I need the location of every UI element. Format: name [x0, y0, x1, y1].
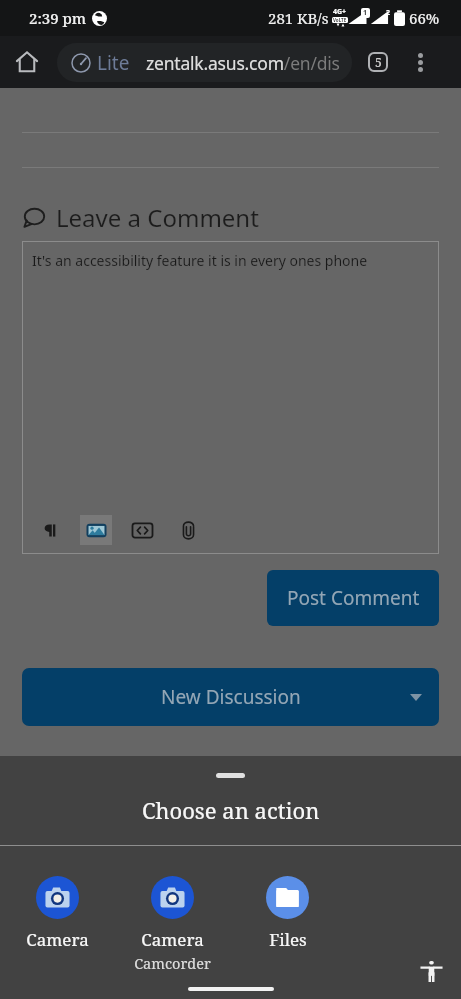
button[interactable]: Attach file	[165, 512, 211, 548]
button[interactable]: Tabs, 5 open	[356, 36, 400, 88]
staticText: 1	[363, 8, 368, 18]
staticText: It's an accessibility feature it is in e…	[32, 251, 368, 270]
staticText: Leave a Comment	[56, 201, 259, 234]
button[interactable]: New Discussion	[22, 668, 439, 726]
staticText: New Discussion	[161, 684, 301, 710]
staticText: Post Comment	[287, 585, 420, 611]
button[interactable]: Insert code	[119, 512, 165, 548]
staticText: Lite	[97, 50, 130, 76]
staticText: Camera	[141, 928, 204, 951]
staticText: Choose an action	[142, 795, 320, 825]
button[interactable]: Lite	[57, 43, 352, 82]
staticText: 4G+	[333, 7, 347, 17]
staticText: Files	[269, 928, 307, 951]
button[interactable]: Accessibility	[417, 957, 445, 985]
staticText: Camcorder	[134, 953, 211, 973]
button[interactable]: Camera Camcorder	[115, 876, 230, 973]
staticText: 66%	[409, 8, 440, 28]
button[interactable]: Post Comment	[267, 570, 439, 626]
staticText: 281 KB/s	[268, 8, 329, 28]
button[interactable]: Insert image	[73, 512, 119, 548]
button[interactable]: Files	[230, 876, 345, 951]
staticText: 5	[375, 54, 382, 70]
staticText: Camera	[26, 928, 89, 951]
button[interactable]: Home	[0, 36, 54, 88]
button[interactable]: Paragraph	[27, 512, 73, 548]
staticText: zentalk.asus.com/en/dis	[146, 51, 340, 75]
button[interactable]: More options	[400, 36, 440, 88]
button[interactable]: Camera	[0, 876, 115, 951]
staticText: VoLTE	[333, 17, 347, 23]
staticText: 2	[386, 8, 391, 18]
staticText: 2:39 pm	[29, 8, 87, 28]
